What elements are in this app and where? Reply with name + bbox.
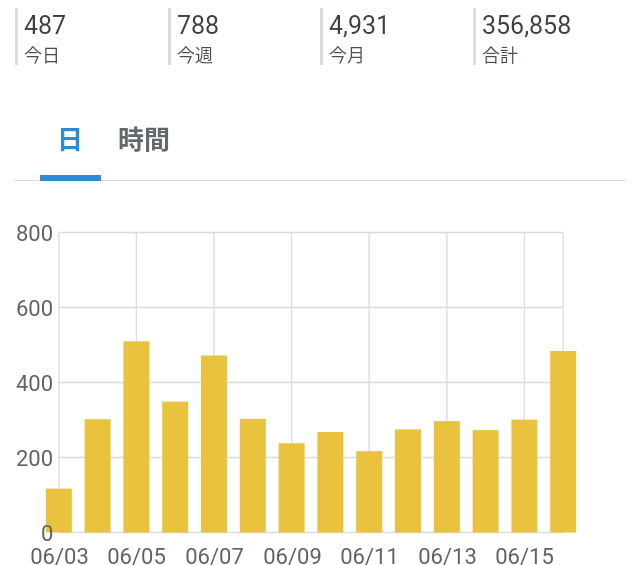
staticText: 356,858 (482, 11, 572, 40)
other: Daily step count bar chart (0, 0, 640, 565)
staticText: 06/13 (418, 544, 477, 565)
staticText: 0 (41, 521, 54, 547)
button[interactable]: 日 (40, 108, 101, 168)
staticText: 400 (16, 371, 54, 397)
staticText: 日 (57, 119, 84, 157)
staticText: 06/05 (107, 544, 166, 565)
staticText: 06/07 (185, 544, 244, 565)
staticText: 06/11 (340, 544, 399, 565)
button[interactable]: 356,858 (473, 0, 625, 75)
staticText: 今月 (329, 41, 365, 67)
staticText: 200 (16, 446, 54, 472)
staticText: 487 (24, 11, 67, 40)
staticText: 合計 (482, 41, 518, 67)
staticText: 時間 (118, 119, 171, 157)
staticText: 788 (177, 11, 220, 40)
staticText: 今週 (177, 41, 213, 67)
button[interactable]: 788 (168, 0, 320, 75)
staticText: 06/03 (30, 544, 89, 565)
button[interactable]: 487 (15, 0, 167, 75)
staticText: 06/15 (495, 544, 554, 565)
staticText: 今日 (24, 41, 60, 67)
button[interactable]: 4,931 (320, 0, 472, 75)
button[interactable]: 時間 (101, 108, 188, 168)
staticText: 600 (16, 296, 54, 322)
staticText: 800 (16, 221, 54, 247)
staticText: 06/09 (263, 544, 322, 565)
staticText: 4,931 (329, 11, 391, 40)
